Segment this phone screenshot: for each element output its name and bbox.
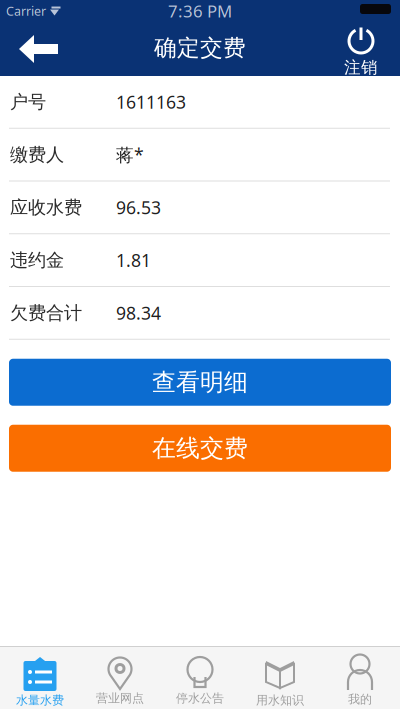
staticText: 缴费人 bbox=[10, 143, 64, 166]
staticText: 注销 bbox=[344, 57, 378, 78]
staticText: 停水公告 bbox=[176, 691, 224, 706]
staticText: Carrier bbox=[6, 2, 46, 20]
staticText: 营业网点 bbox=[96, 691, 144, 706]
staticText: 7:36 PM bbox=[168, 0, 232, 22]
staticText: 1.81 bbox=[116, 248, 151, 272]
button[interactable]: 在线交费 bbox=[9, 425, 391, 472]
staticText: 确定交费 bbox=[154, 34, 246, 62]
staticText: 水量水费 bbox=[16, 693, 64, 708]
staticText: 用水知识 bbox=[256, 693, 304, 708]
staticText: 1611163 bbox=[116, 90, 186, 114]
button[interactable]: 我的 bbox=[320, 647, 400, 709]
staticText: 96.53 bbox=[116, 195, 161, 219]
staticText: 我的 bbox=[348, 692, 372, 707]
button[interactable]: 营业网点 bbox=[80, 647, 160, 709]
button[interactable]: 注销 bbox=[344, 22, 400, 76]
button[interactable]: 返回 bbox=[0, 22, 72, 76]
staticText: 户号 bbox=[10, 90, 46, 113]
button[interactable]: 查看明细 bbox=[9, 359, 391, 406]
staticText: 98.34 bbox=[116, 301, 161, 325]
staticText: 蒋* bbox=[116, 143, 144, 167]
button[interactable]: 水量水费 bbox=[0, 647, 80, 709]
button[interactable]: 停水公告 bbox=[160, 647, 240, 709]
staticText: 应收水费 bbox=[10, 196, 82, 219]
staticText: 查看明细 bbox=[152, 367, 248, 397]
staticText: 欠费合计 bbox=[10, 301, 82, 324]
button[interactable]: 用水知识 bbox=[240, 647, 320, 709]
staticText: 违约金 bbox=[10, 249, 64, 271]
staticText: 在线交费 bbox=[152, 433, 248, 463]
